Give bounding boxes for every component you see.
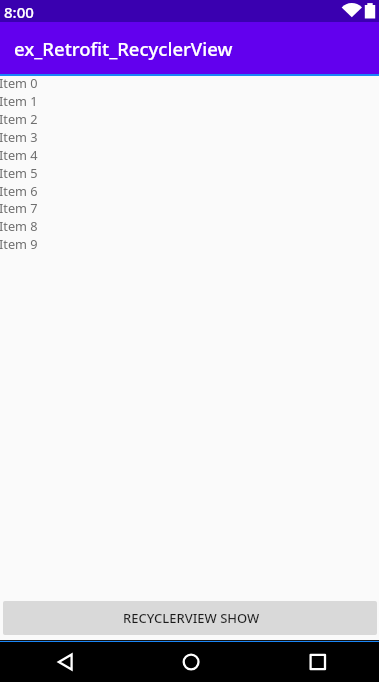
staticText: Item 7: [0, 199, 38, 216]
staticText: RECYCLERVIEW SHOW: [123, 609, 260, 627]
button[interactable]: Home: [127, 642, 253, 682]
button[interactable]: Item 4: [0, 146, 379, 164]
staticText: Item 6: [0, 182, 38, 199]
staticText: ex_Retrofit_RecyclerView: [14, 36, 233, 61]
staticText: Item 0: [0, 74, 38, 91]
button[interactable]: Item 0: [0, 74, 379, 92]
button[interactable]: Recent apps: [253, 642, 379, 682]
button[interactable]: Item 5: [0, 164, 379, 182]
button[interactable]: Item 7: [0, 199, 379, 217]
staticText: Item 8: [0, 217, 38, 234]
staticText: Item 4: [0, 146, 38, 163]
button[interactable]: Item 6: [0, 182, 379, 200]
button[interactable]: Item 2: [0, 110, 379, 128]
staticText: Item 2: [0, 110, 38, 127]
button[interactable]: Item 8: [0, 217, 379, 235]
staticText: 8:00: [4, 2, 34, 22]
button[interactable]: RECYCLERVIEW SHOW: [3, 601, 377, 635]
button[interactable]: Item 9: [0, 235, 379, 253]
staticText: Item 9: [0, 235, 38, 252]
button[interactable]: Item 1: [0, 92, 379, 110]
button[interactable]: Item 3: [0, 128, 379, 146]
button[interactable]: Back: [0, 642, 127, 682]
staticText: Item 5: [0, 164, 38, 181]
staticText: Item 3: [0, 128, 38, 145]
staticText: Item 1: [0, 92, 38, 109]
